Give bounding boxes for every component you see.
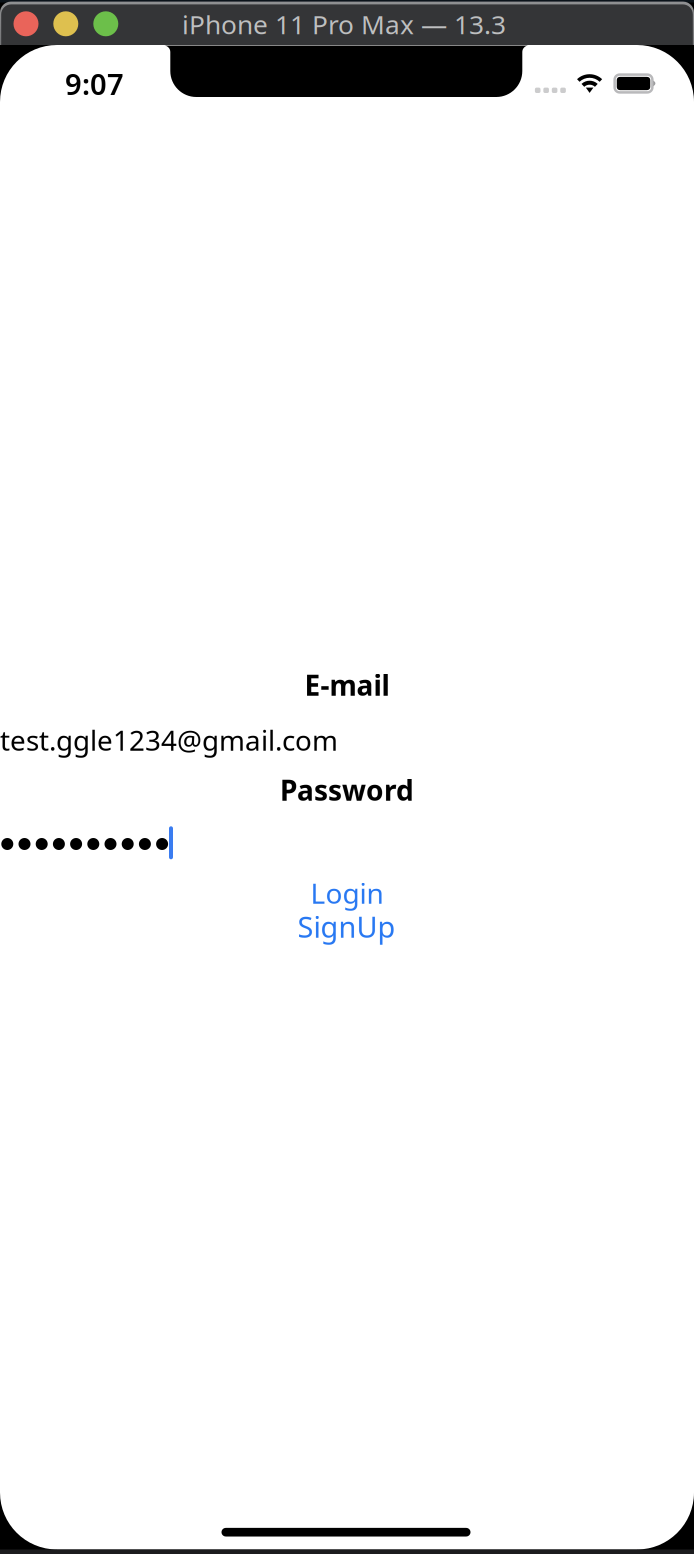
staticText: Login	[310, 874, 383, 912]
staticText: 9:07	[65, 64, 124, 104]
staticText: test.ggle1234@gmail.com	[0, 721, 338, 759]
button[interactable]: SignUp	[286, 910, 406, 944]
staticText: SignUp	[297, 907, 395, 946]
staticText: E-mail	[304, 666, 389, 704]
staticText: iPhone 11 Pro Max — 13.3	[182, 6, 506, 42]
button[interactable]: Login	[287, 876, 407, 910]
staticText: Password	[280, 771, 414, 809]
